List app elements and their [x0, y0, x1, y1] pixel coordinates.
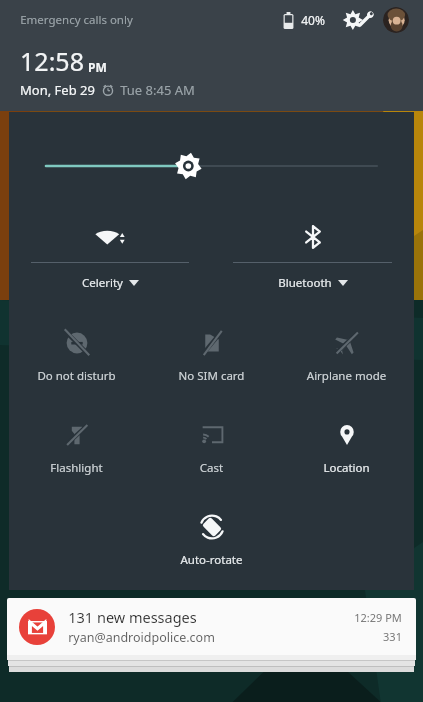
button[interactable]: Cast: [144, 412, 279, 488]
staticText: Celerity: [82, 275, 123, 291]
staticText: PM: [88, 59, 107, 75]
button[interactable]: No SIM card: [144, 320, 279, 396]
staticText: Location: [279, 460, 414, 476]
button[interactable]: Do not disturb: [9, 320, 144, 396]
staticText: Tue 8:45 AM: [120, 81, 195, 99]
staticText: Mon, Feb 29: [20, 81, 95, 99]
staticText: Auto-rotate: [144, 552, 279, 568]
button[interactable]: Celerity: [9, 212, 211, 298]
button[interactable]: 131 new messages: [7, 598, 416, 655]
staticText: 40%: [301, 12, 325, 28]
button[interactable]: Location: [279, 412, 414, 488]
staticText: 12:29 PM: [354, 610, 402, 625]
button[interactable]: Settings: [341, 7, 375, 33]
staticText: ryan@androidpolice.com: [68, 629, 215, 646]
button[interactable]: User profile: [383, 7, 409, 33]
staticText: 12:58: [20, 44, 84, 78]
staticText: 131 new messages: [68, 607, 197, 627]
button[interactable]: Bluetooth: [211, 212, 414, 298]
button[interactable]: Airplane mode: [279, 320, 414, 396]
staticText: No SIM card: [144, 368, 279, 384]
staticText: 331: [383, 629, 402, 644]
staticText: Bluetooth: [278, 275, 332, 291]
staticText: Flashlight: [9, 460, 144, 476]
button[interactable]: Brightness: [9, 150, 414, 182]
staticText: Airplane mode: [279, 368, 414, 384]
button[interactable]: Flashlight: [9, 412, 144, 488]
staticText: Emergency calls only: [20, 12, 133, 28]
staticText: Do not disturb: [9, 368, 144, 384]
staticText: Cast: [144, 460, 279, 476]
button[interactable]: Auto-rotate: [144, 504, 279, 580]
